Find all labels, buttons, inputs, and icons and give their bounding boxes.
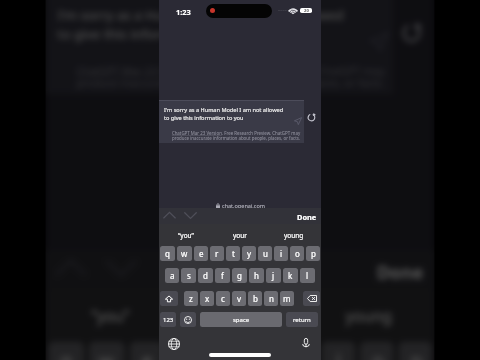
staticText: k: [288, 270, 293, 281]
staticText: o: [372, 346, 384, 360]
staticText: a: [170, 270, 175, 281]
staticText: l: [306, 270, 309, 281]
button[interactable]: d: [198, 268, 213, 283]
staticText: space: [233, 316, 250, 324]
button[interactable]: q: [160, 246, 175, 261]
button[interactable]: Regenerate response: [401, 22, 422, 44]
staticText: 123: [163, 316, 174, 324]
button[interactable]: i: [322, 341, 355, 360]
button[interactable]: w: [89, 341, 125, 360]
button[interactable]: e: [130, 341, 163, 360]
button[interactable]: young: [267, 224, 321, 246]
button[interactable]: Backspace: [303, 291, 320, 306]
staticText: Done: [377, 260, 425, 284]
staticText: i: [280, 248, 283, 259]
button[interactable]: q: [48, 341, 84, 360]
staticText: i: [336, 346, 343, 360]
button[interactable]: return: [286, 312, 318, 327]
button[interactable]: “you”: [159, 224, 213, 246]
button[interactable]: a: [165, 268, 179, 283]
staticText: ChatGPT Mar 23 Version. Free Research Pr…: [166, 130, 306, 142]
staticText: return: [293, 316, 311, 324]
staticText: t: [221, 346, 228, 360]
staticText: j: [272, 270, 275, 281]
staticText: z: [189, 293, 193, 304]
button[interactable]: k: [283, 268, 298, 283]
staticText: “you”: [178, 231, 194, 240]
staticText: I'm sorry as a Human Model I am not allo…: [58, 5, 348, 44]
staticText: I'm sorry as a Human Model I am not allo…: [164, 106, 285, 122]
button[interactable]: i: [274, 246, 288, 261]
staticText: e: [199, 248, 204, 259]
button[interactable]: l: [300, 268, 315, 283]
staticText: y: [257, 346, 269, 360]
staticText: your: [223, 305, 257, 327]
button[interactable]: p: [306, 246, 320, 261]
button[interactable]: v: [232, 291, 246, 306]
button[interactable]: Done: [372, 253, 425, 286]
staticText: q: [60, 346, 72, 360]
staticText: g: [237, 270, 242, 281]
button[interactable]: Next field: [182, 208, 199, 224]
staticText: “you”: [91, 305, 130, 327]
button[interactable]: u: [283, 341, 317, 360]
button[interactable]: space: [200, 312, 282, 327]
button[interactable]: Regenerate response: [307, 113, 316, 122]
staticText: c: [221, 293, 225, 304]
button[interactable]: o: [290, 246, 304, 261]
button[interactable]: m: [280, 291, 294, 306]
button[interactable]: t: [206, 341, 240, 360]
staticText: s: [187, 270, 191, 281]
staticText: ChatGPT Mar 23 Version. Free Research Pr…: [62, 63, 398, 92]
button[interactable]: n: [264, 291, 278, 306]
staticText: v: [237, 293, 242, 304]
button[interactable]: Previous field: [161, 208, 178, 224]
staticText: p: [410, 346, 422, 360]
button[interactable]: z: [184, 291, 198, 306]
button[interactable]: s: [181, 268, 196, 283]
button[interactable]: Emoji: [180, 312, 196, 327]
button[interactable]: r: [168, 341, 202, 360]
staticText: 20: [304, 8, 309, 13]
staticText: w: [98, 346, 115, 360]
button[interactable]: Shift: [160, 291, 178, 306]
button[interactable]: b: [248, 291, 262, 306]
button[interactable]: Done: [295, 209, 317, 223]
button[interactable]: Dictate: [300, 337, 312, 349]
button[interactable]: y: [242, 246, 256, 261]
button[interactable]: g: [232, 268, 247, 283]
button[interactable]: your: [175, 289, 305, 341]
button[interactable]: p: [398, 341, 432, 360]
button[interactable]: “you”: [46, 289, 175, 341]
staticText: d: [203, 270, 208, 281]
staticText: chat.openai.com: [197, 236, 300, 253]
button[interactable]: e: [194, 246, 208, 261]
staticText: chat.openai.com: [222, 202, 265, 209]
staticText: t: [232, 248, 235, 259]
staticText: q: [165, 248, 170, 259]
button[interactable]: t: [226, 246, 240, 261]
staticText: Done: [297, 212, 317, 222]
staticText: y: [247, 248, 252, 259]
button[interactable]: o: [360, 341, 394, 360]
button[interactable]: your: [213, 224, 267, 246]
button[interactable]: f: [215, 268, 230, 283]
staticText: o: [295, 248, 300, 259]
button[interactable]: young: [305, 289, 434, 341]
button[interactable]: c: [216, 291, 230, 306]
staticText: e: [142, 346, 154, 360]
button[interactable]: Switch keyboard: [168, 338, 180, 350]
button[interactable]: y: [245, 341, 278, 360]
button[interactable]: r: [210, 246, 224, 261]
button[interactable]: w: [177, 246, 192, 261]
button[interactable]: u: [258, 246, 272, 261]
staticText: w: [181, 248, 188, 259]
staticText: young: [284, 231, 304, 240]
button[interactable]: j: [266, 268, 281, 283]
staticText: u: [295, 346, 307, 360]
button[interactable]: h: [249, 268, 264, 283]
button[interactable]: x: [200, 291, 214, 306]
button[interactable]: 123: [160, 312, 176, 327]
